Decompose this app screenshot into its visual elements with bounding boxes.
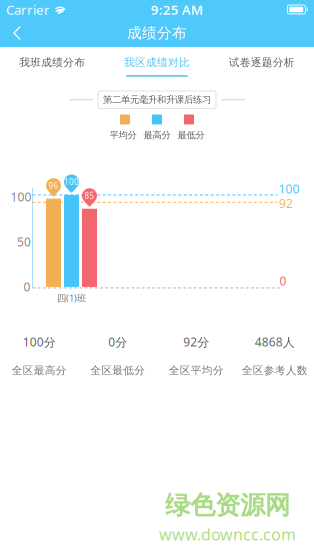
staticText: 0分 [108,334,127,350]
button[interactable]: 我班成绩分布 [0,47,105,79]
staticText: 0 [23,279,30,295]
staticText: 全区参考人数 [242,364,308,377]
staticText: www.downcc.com [159,524,296,545]
button[interactable]: Back [0,19,33,46]
button[interactable]: 我区成绩对比 [105,47,209,79]
staticText: 绿色资源网 [165,490,290,521]
staticText: 成绩分布 [127,24,187,42]
staticText: 4868人 [255,334,295,350]
staticText: 92 [279,195,293,211]
staticText: 四(1)班 [57,292,86,304]
staticText: 9:25 AM [151,1,203,18]
staticText: 最高分 [143,129,170,141]
button[interactable]: 试卷逐题分析 [209,47,314,79]
staticText: 100 [10,189,31,205]
staticText: 第二单元毫升和升课后练习 [103,94,211,105]
staticText: 最低分 [177,129,204,141]
staticText: 0 [279,273,286,289]
staticText: Carrier [6,1,50,18]
staticText: 100 [64,177,79,187]
staticText: 全区平均分 [169,364,224,377]
staticText: 全区最高分 [12,364,67,377]
staticText: 全区最低分 [90,364,145,377]
staticText: 我区成绩对比 [124,56,190,69]
staticText: 平均分 [109,129,136,141]
staticText: 85 [84,190,94,201]
staticText: 试卷逐题分析 [229,56,295,69]
staticText: 50 [17,234,31,250]
staticText: 96 [48,180,58,191]
staticText: 我班成绩分布 [19,56,85,69]
staticText: 100分 [23,334,56,350]
staticText: 92分 [183,334,209,350]
staticText: 100 [278,181,299,197]
